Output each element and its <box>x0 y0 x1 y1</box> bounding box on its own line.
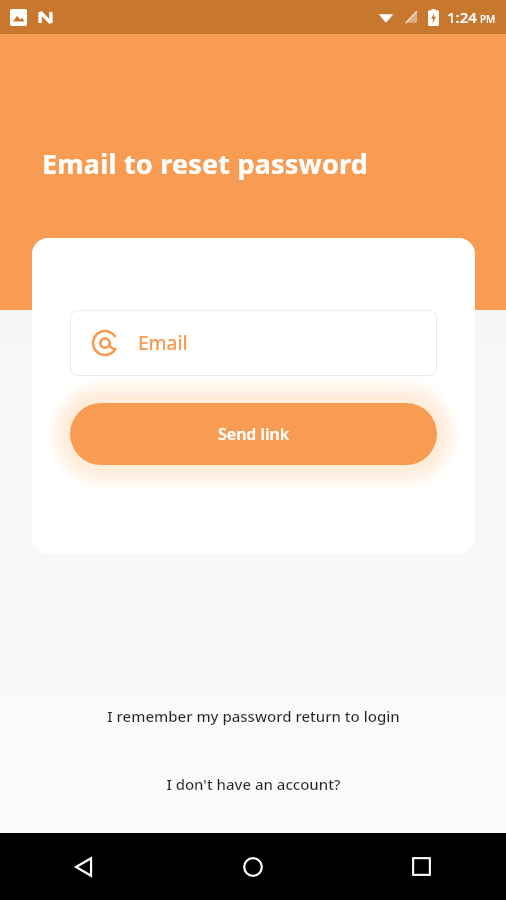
staticText: Email <box>138 330 188 356</box>
staticText: Email to reset password <box>42 145 368 182</box>
button[interactable]: I remember my password return to login <box>91 700 416 732</box>
button[interactable]: Recent apps <box>337 833 506 900</box>
button[interactable]: Home <box>168 833 337 900</box>
button[interactable]: I don't have an account? <box>150 768 357 800</box>
staticText: PM <box>480 12 496 26</box>
staticText: I don't have an account? <box>166 774 341 794</box>
button[interactable]: Email <box>70 310 437 376</box>
staticText: 1:24 <box>447 7 477 27</box>
staticText: I remember my password return to login <box>107 706 400 726</box>
button[interactable]: Send link <box>70 403 437 465</box>
button[interactable]: Back <box>0 833 168 900</box>
staticText: Send link <box>218 423 290 445</box>
